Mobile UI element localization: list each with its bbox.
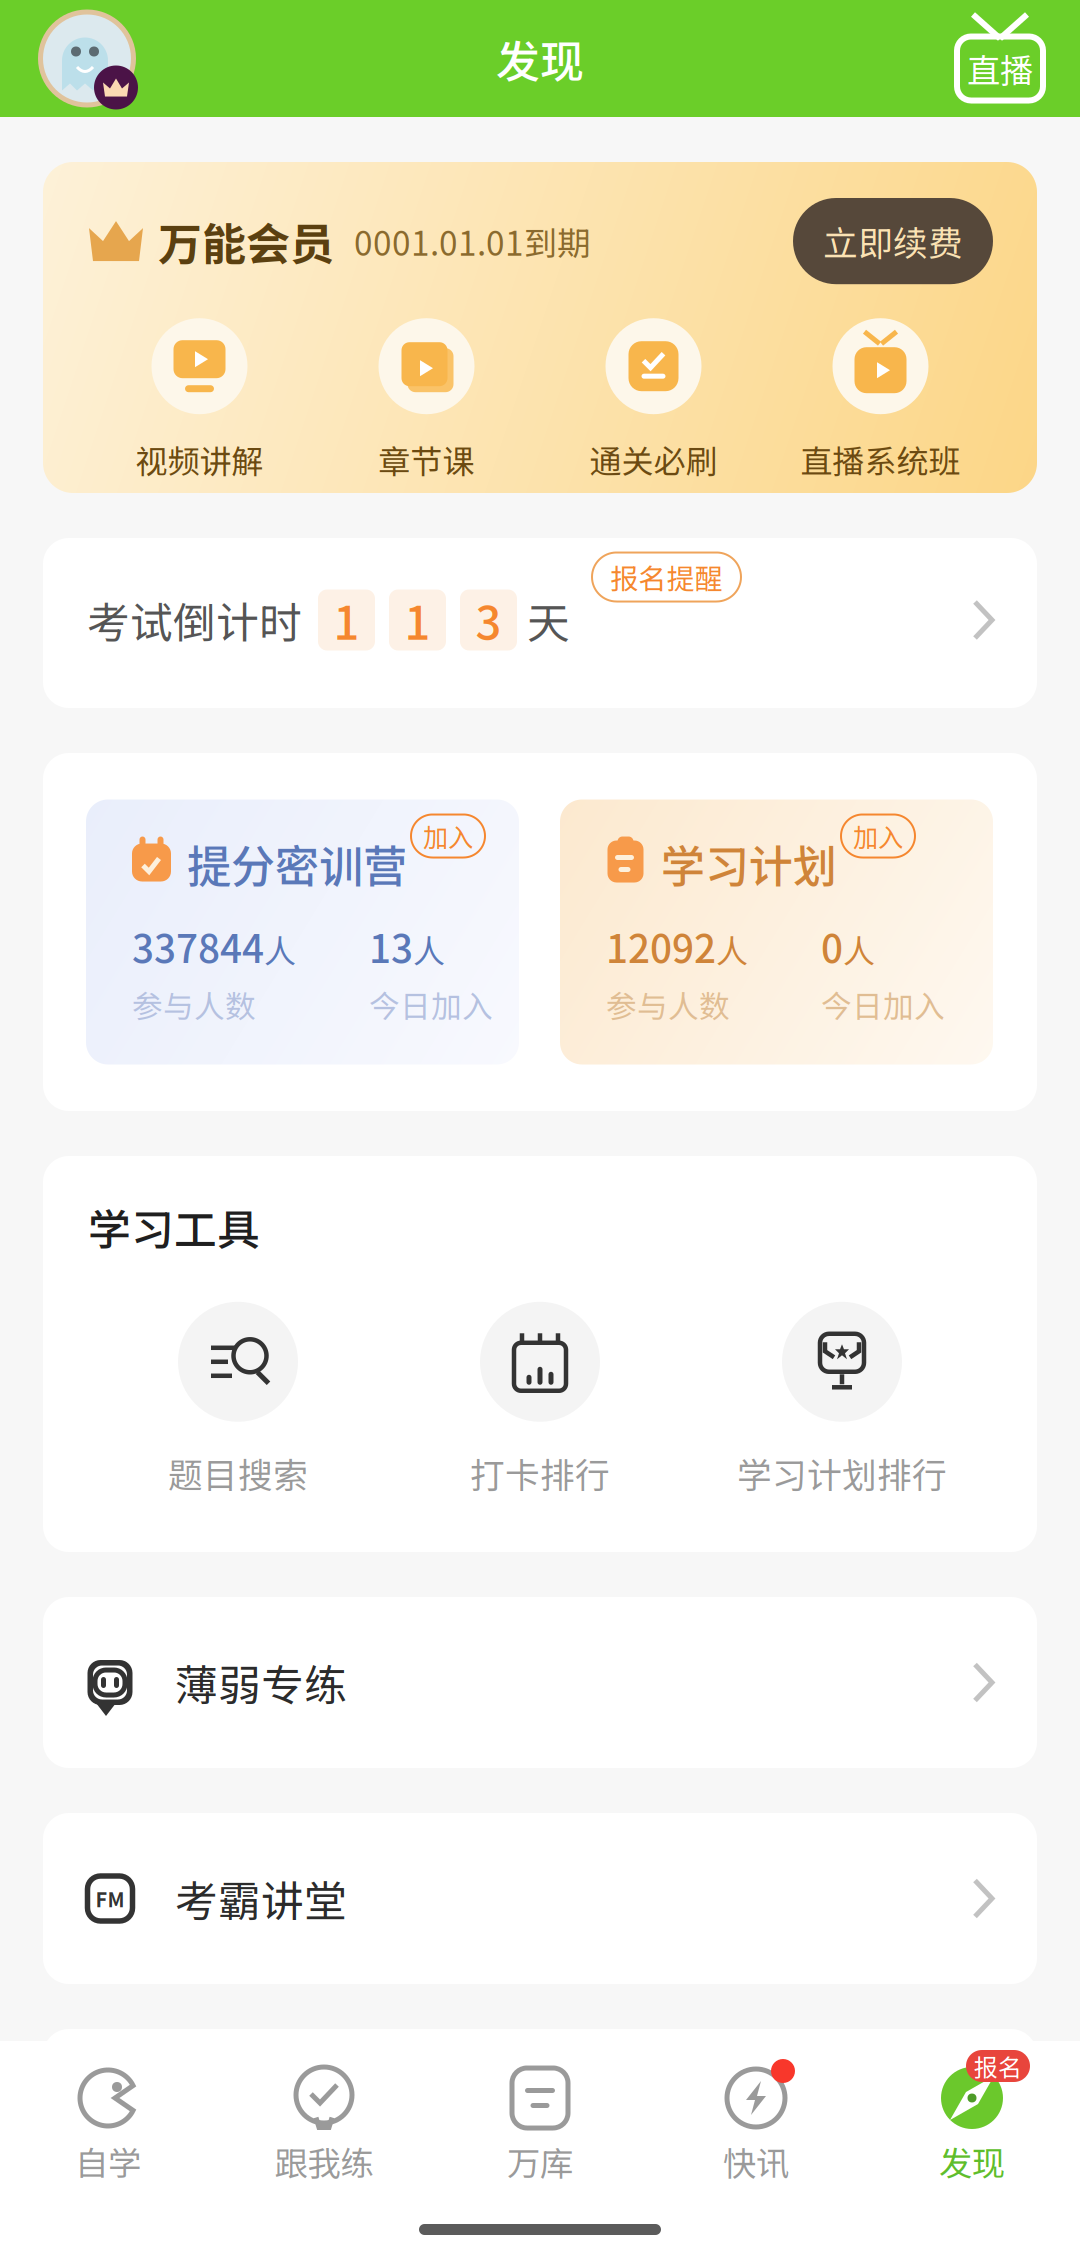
button[interactable]: 万库 [432,2067,648,2185]
staticText: 1 [404,587,430,653]
staticText: 报名 [974,2049,1022,2083]
staticText: 万库 [507,2137,573,2185]
staticText: 参与人数 [606,982,730,1026]
button[interactable]: 直播系统班 [767,318,994,482]
staticText: 薄弱专练 [175,1652,347,1713]
button[interactable]: 薄弱专练 [43,1597,1037,1768]
staticText: 跟我练 [274,2137,373,2185]
staticText: 考试倒计时 [87,589,302,651]
button[interactable]: 打卡排行 [389,1302,691,1498]
staticText: 天 [527,589,570,651]
staticText: 立即续费 [823,216,963,266]
button[interactable]: 个人中心 [32,3,142,113]
button[interactable]: 直播 [946,4,1054,112]
button[interactable]: 快讯 [648,2067,864,2185]
staticText: 今日加入 [369,982,493,1026]
staticText: 0 [821,918,843,974]
staticText: 0001.01.01到期 [354,217,590,265]
button[interactable]: 章节课 [313,318,540,482]
staticText: 人 [413,926,445,972]
button[interactable]: 跟我练 [216,2067,432,2185]
staticText: 章节课 [378,436,474,482]
staticText: 加入 [423,818,473,854]
staticText: 1 [333,587,359,653]
staticText: 人 [264,926,296,972]
button[interactable]: 学习计划排行 [691,1302,993,1498]
button[interactable]: 学习计划 [560,799,993,1064]
button[interactable]: 通关必刷 [540,318,767,482]
staticText: 学习计划 [661,831,837,895]
staticText: 直播 [967,44,1033,93]
button[interactable]: 题目搜索 [87,1302,389,1498]
button[interactable]: 提分密训营 [86,799,519,1064]
staticText: 打卡排行 [470,1448,610,1498]
staticText: 快讯 [723,2137,789,2185]
staticText: 发现 [939,2137,1005,2185]
staticText: 发现 [496,27,584,90]
button[interactable]: FM [43,1813,1037,1984]
staticText: 学习计划排行 [737,1448,947,1498]
staticText: 题目搜索 [168,1448,308,1498]
staticText: 12092 [606,918,716,974]
staticText: 今日加入 [821,982,945,1026]
button[interactable]: 报名 [864,2067,1080,2185]
staticText: 3 [475,587,501,653]
button[interactable]: 立即续费 [793,198,993,284]
staticText: 直播系统班 [800,436,960,482]
staticText: 自学 [75,2137,141,2185]
button[interactable]: 视频讲解 [86,318,313,482]
staticText: 人 [716,926,748,972]
staticText: 视频讲解 [135,436,263,482]
staticText: 13 [369,918,413,974]
staticText: 人 [843,926,875,972]
staticText: 考霸讲堂 [175,1868,347,1929]
staticText: 337844 [132,918,264,974]
button[interactable]: 自学 [0,2067,216,2185]
staticText: 通关必刷 [589,436,717,482]
staticText: 万能会员 [158,209,334,273]
staticText: 学习工具 [88,1196,260,1258]
staticText: 加入 [853,818,903,854]
staticText: 报名提醒 [610,557,722,597]
staticText: 提分密训营 [187,831,407,895]
staticText: FM [95,1884,124,1913]
staticText: 参与人数 [132,982,256,1026]
button[interactable]: 考试倒计时 [43,538,1037,708]
